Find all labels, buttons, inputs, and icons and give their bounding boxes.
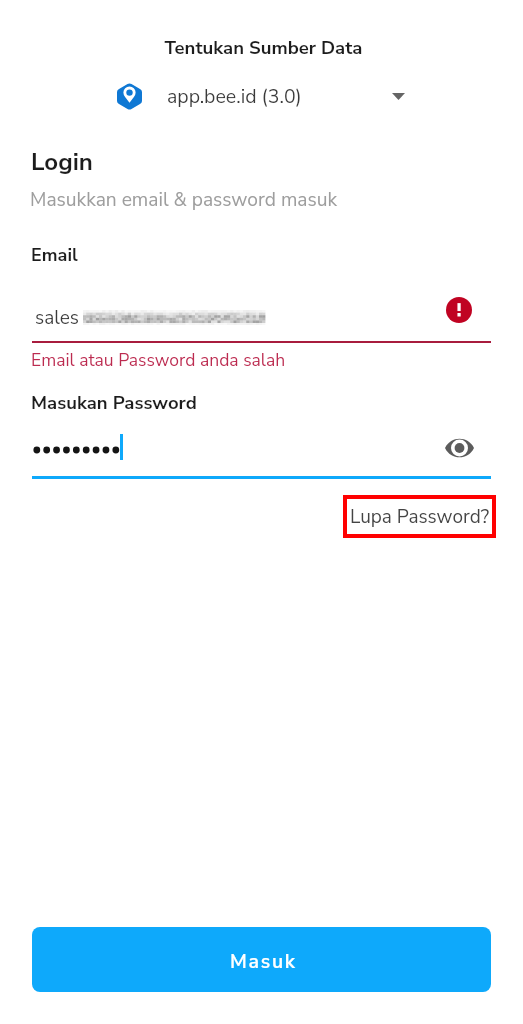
staticText: Email atau Password anda salah xyxy=(31,348,286,372)
staticText: Tentukan Sumber Data xyxy=(2,35,523,60)
button[interactable]: Email xyxy=(32,295,436,341)
button[interactable]: Pilih sumber data xyxy=(380,78,416,114)
button[interactable]: app.bee.id (3.0) xyxy=(117,80,382,112)
staticText: Login xyxy=(31,146,93,179)
staticText: app.bee.id (3.0) xyxy=(167,83,302,110)
button[interactable]: Lupa Password? xyxy=(343,495,496,538)
button[interactable]: Masuk xyxy=(32,927,491,992)
button[interactable]: Masukan Password xyxy=(32,430,436,476)
button[interactable]: Tampilkan password xyxy=(444,432,475,463)
other: Error xyxy=(446,297,472,323)
staticText: Lupa Password? xyxy=(350,504,490,530)
staticText: sales xyxy=(35,305,79,331)
staticText: Masukkan email & password masuk xyxy=(30,187,338,213)
staticText: Email xyxy=(31,243,78,268)
staticText: Masuk xyxy=(230,948,297,975)
staticText: Masukan Password xyxy=(31,390,197,415)
